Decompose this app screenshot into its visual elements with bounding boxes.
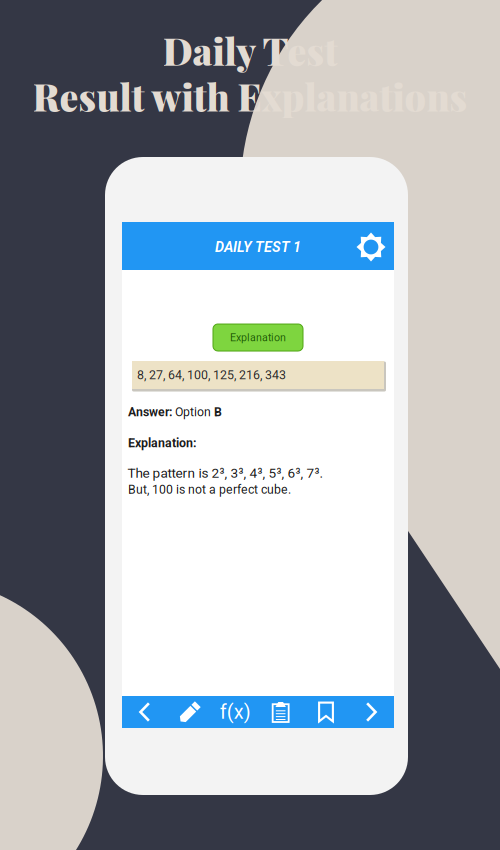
staticText: f(x): [220, 700, 251, 724]
staticText: Explanation: [230, 331, 286, 344]
staticText: DAILY TEST 1: [215, 239, 301, 255]
staticText: Result with Explanations: [32, 71, 467, 121]
staticText: But, 100 is not a perfect cube.: [128, 482, 291, 497]
button[interactable]: Previous: [122, 696, 167, 728]
button[interactable]: Settings: [352, 228, 389, 265]
button[interactable]: Edit: [167, 696, 213, 728]
button[interactable]: Next: [349, 696, 394, 728]
staticText: Explanation:: [128, 436, 196, 450]
staticText: The pattern is 2³, 3³, 4³, 5³, 6³, 7³.: [127, 465, 323, 481]
button[interactable]: Results: [258, 696, 303, 728]
staticText: Answer: Option B: [128, 405, 222, 419]
button[interactable]: Formula: [213, 696, 258, 728]
staticText: 8, 27, 64, 100, 125, 216, 343: [137, 368, 286, 382]
button[interactable]: Bookmark: [303, 696, 349, 728]
button[interactable]: Explanation: [213, 324, 303, 351]
staticText: Daily Test: [162, 25, 337, 75]
